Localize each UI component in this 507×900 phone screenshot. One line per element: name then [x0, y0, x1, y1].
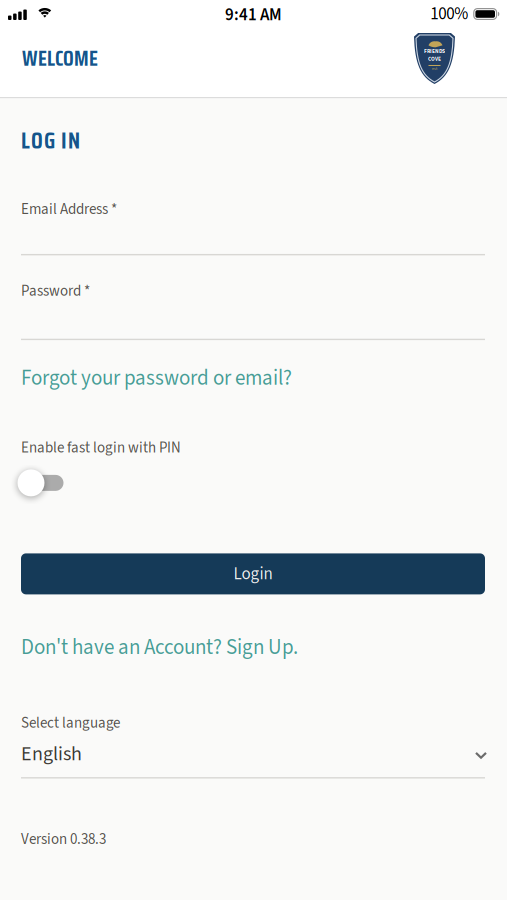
staticText: FRIENDS — [424, 47, 445, 55]
staticText: est — [432, 66, 437, 72]
staticText: Login — [233, 562, 272, 586]
staticText: Select language — [21, 712, 120, 734]
button[interactable]: Email Address — [21, 199, 485, 255]
staticText: LOG IN — [21, 122, 80, 159]
button[interactable]: English — [21, 740, 487, 768]
staticText: Don't have an Account? Sign Up. — [21, 632, 298, 662]
button[interactable]: Forgot your password or email? — [21, 363, 292, 393]
staticText: English — [21, 740, 82, 768]
staticText: Password * — [21, 280, 90, 302]
button[interactable]: Login — [21, 553, 485, 594]
button[interactable]: Password — [21, 280, 485, 340]
staticText: Enable fast login with PIN — [21, 437, 181, 458]
staticText: 100% — [430, 2, 468, 26]
button[interactable]: Don't have an Account? Sign Up. — [21, 632, 298, 662]
staticText: COVE — [428, 55, 441, 63]
staticText: Email Address * — [21, 199, 117, 220]
staticText: WELCOME — [22, 42, 98, 75]
staticText: Forgot your password or email? — [21, 363, 292, 393]
button[interactable]: Enable fast login with PIN — [17, 469, 66, 496]
staticText: 9:41 AM — [225, 3, 282, 27]
staticText: Version 0.38.3 — [21, 828, 106, 850]
